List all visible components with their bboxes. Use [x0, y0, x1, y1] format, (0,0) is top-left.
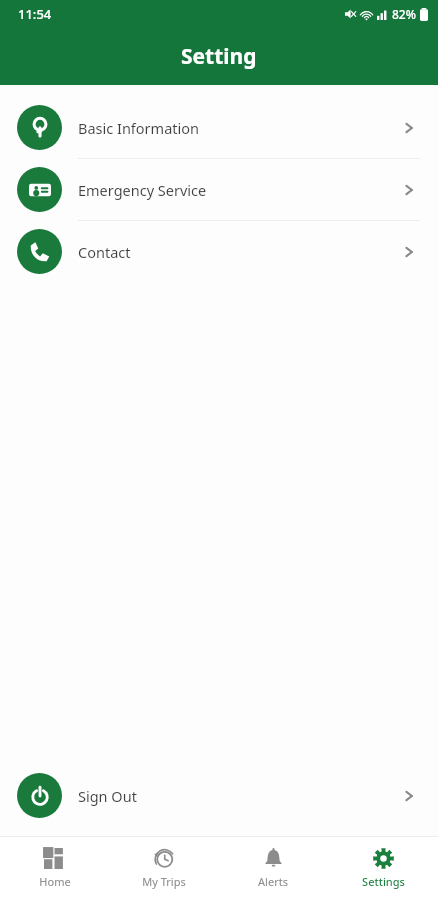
staticText: Settings [362, 874, 405, 889]
staticText: Setting [181, 42, 257, 71]
button[interactable]: Emergency Service [0, 159, 438, 220]
staticText: 11:54 [18, 5, 52, 23]
button[interactable]: Sign Out [0, 765, 438, 826]
staticText: Contact [78, 242, 402, 262]
button[interactable]: Alerts [218, 837, 328, 900]
button[interactable]: Basic Information [0, 97, 438, 158]
staticText: 82% [392, 6, 416, 22]
button[interactable]: Settings [328, 837, 438, 900]
button[interactable]: Contact [0, 221, 438, 282]
staticText: Sign Out [78, 786, 402, 806]
staticText: Alerts [258, 874, 288, 889]
staticText: Emergency Service [78, 180, 402, 200]
staticText: Basic Information [78, 118, 402, 138]
staticText: My Trips [142, 874, 186, 889]
button[interactable]: My Trips [109, 837, 218, 900]
button[interactable]: Home [0, 837, 109, 900]
staticText: Home [39, 874, 71, 889]
